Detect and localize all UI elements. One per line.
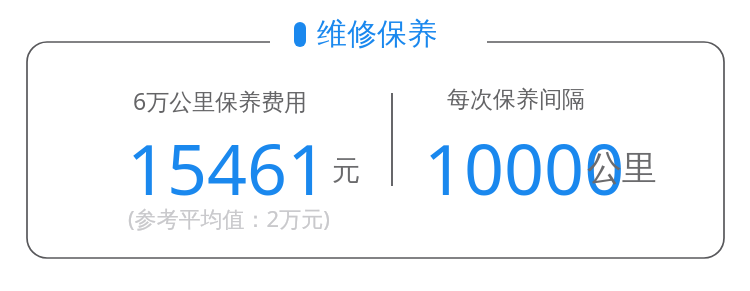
staticText: 每次保养间隔 (447, 85, 585, 114)
staticText: 公里 (587, 146, 657, 190)
staticText: 6万公里保养费用 (133, 85, 308, 116)
staticText: 15461 (127, 120, 328, 215)
staticText: 10000 (424, 120, 625, 215)
staticText: (参考平均值：2万元) (128, 203, 330, 233)
other: Section marker (294, 22, 306, 47)
button[interactable]: 维修保养 (317, 15, 437, 53)
staticText: 元 (332, 153, 360, 188)
